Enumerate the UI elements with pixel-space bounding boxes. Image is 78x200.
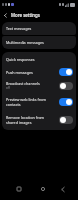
staticText: Push messages [6, 70, 33, 75]
staticText: Remove location from shared images [6, 115, 50, 125]
button[interactable]: Toggle Remove location from shared image… [59, 116, 73, 124]
button[interactable]: Toggle Preview web links from contacts [59, 98, 73, 106]
button[interactable]: Text messages [2, 22, 76, 35]
button[interactable]: Preview web links from contacts [2, 93, 76, 110]
button[interactable]: Quick responses [2, 52, 76, 66]
button[interactable]: Navigate up [0, 10, 11, 21]
button[interactable]: Home [31, 179, 55, 199]
button[interactable]: Multimedia messages [2, 36, 76, 49]
button[interactable]: Toggle Broadcast channels [59, 82, 73, 90]
staticText: Quick responses [6, 57, 35, 62]
button[interactable]: Broadcast channels [2, 78, 76, 93]
button[interactable]: Toggle Push messages [59, 68, 73, 76]
button[interactable]: Recent apps [7, 179, 31, 199]
staticText: Multimedia messages [6, 40, 44, 45]
staticText: Broadcast channels [6, 81, 40, 86]
staticText: off [6, 86, 10, 90]
button[interactable]: Remove location from shared images [2, 110, 76, 130]
staticText: Preview web links from contacts [6, 97, 50, 107]
button[interactable]: Push messages [2, 66, 76, 78]
staticText: More settings [11, 12, 40, 18]
button[interactable]: Back [55, 179, 71, 199]
staticText: Text messages [6, 26, 32, 31]
